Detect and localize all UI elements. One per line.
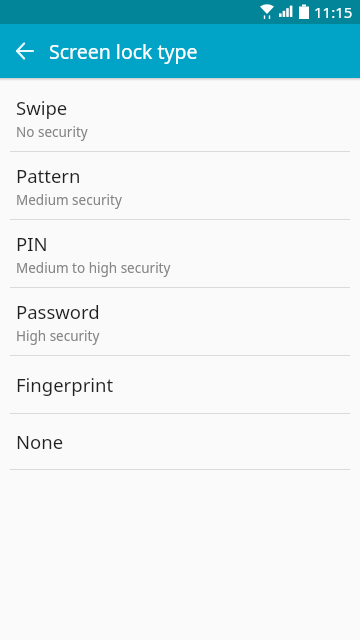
- staticText: Medium to high security: [16, 259, 171, 277]
- staticText: Fingerprint: [16, 372, 114, 397]
- button[interactable]: Fingerprint: [0, 356, 360, 413]
- staticText: High security: [16, 327, 100, 345]
- staticText: No security: [16, 123, 88, 141]
- button[interactable]: PIN: [0, 220, 360, 287]
- button[interactable]: [0, 24, 49, 78]
- staticText: 11:15: [314, 2, 353, 22]
- staticText: None: [16, 429, 64, 454]
- staticText: Pattern: [16, 163, 81, 188]
- staticText: Screen lock type: [49, 38, 198, 65]
- button[interactable]: Pattern: [0, 152, 360, 219]
- button[interactable]: None: [0, 414, 360, 469]
- button[interactable]: Password: [0, 288, 360, 355]
- staticText: Password: [16, 299, 100, 324]
- staticText: Swipe: [16, 95, 68, 120]
- staticText: PIN: [16, 231, 48, 256]
- staticText: Medium security: [16, 191, 122, 209]
- button[interactable]: Swipe: [0, 84, 360, 151]
